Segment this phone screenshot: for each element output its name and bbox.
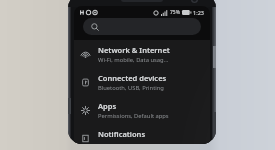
staticText: Network & Internet bbox=[98, 45, 170, 55]
button[interactable]: Apps bbox=[74, 96, 210, 124]
staticText: Wi-Fi, mobile, Data usag… bbox=[98, 56, 169, 64]
staticText: Permissions, Default apps bbox=[98, 112, 169, 120]
other: Apps bbox=[81, 106, 90, 115]
staticText: Bluetooth, USB, Printing bbox=[98, 84, 164, 92]
button[interactable]: Network & Internet bbox=[74, 40, 210, 68]
staticText: 75% bbox=[170, 9, 180, 16]
staticText: 1:23 bbox=[193, 9, 204, 16]
other: Connected devices bbox=[81, 78, 90, 87]
staticText: Apps bbox=[98, 101, 117, 111]
staticText: Notifications bbox=[98, 129, 146, 139]
staticText: Connected devices bbox=[98, 73, 167, 83]
button[interactable]: Connected devices bbox=[74, 68, 210, 96]
other: Network & Internet bbox=[81, 50, 90, 59]
button[interactable]: Notifications bbox=[74, 124, 210, 144]
button[interactable] bbox=[83, 18, 201, 35]
other: Notifications bbox=[81, 134, 90, 143]
